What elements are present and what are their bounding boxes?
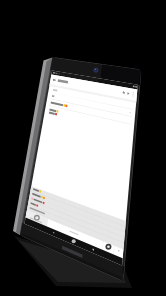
button[interactable]	[32, 237, 136, 245]
button[interactable]	[67, 79, 107, 91]
button[interactable]: Back	[53, 79, 67, 91]
button[interactable]	[32, 229, 136, 237]
button[interactable]	[32, 213, 136, 221]
button[interactable]: More options	[132, 84, 141, 95]
button[interactable]: Send	[122, 83, 132, 94]
button[interactable]	[32, 221, 136, 229]
button[interactable]: Home	[80, 264, 94, 275]
button[interactable]	[37, 101, 132, 112]
button[interactable]: Attach file	[112, 82, 122, 93]
button[interactable]: Recent apps	[102, 266, 116, 277]
button[interactable]	[32, 245, 136, 253]
